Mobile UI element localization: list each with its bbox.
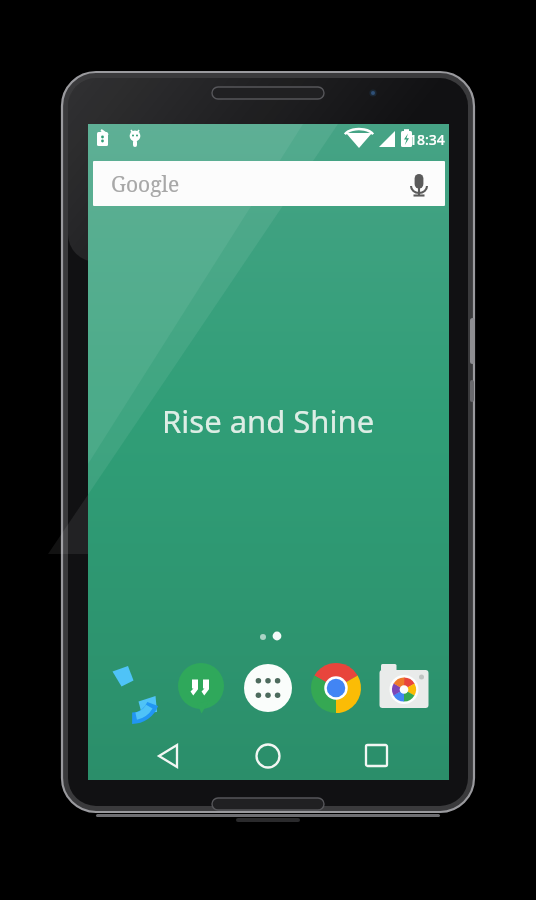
staticText: Google <box>111 170 180 199</box>
staticText: 18:34 <box>409 130 445 149</box>
staticText: Rise and Shine <box>162 400 375 442</box>
button[interactable]: Google <box>93 161 445 206</box>
button[interactable]: Phone <box>106 661 162 717</box>
button[interactable]: Hangouts <box>173 661 229 717</box>
button[interactable]: All apps <box>240 661 296 717</box>
button[interactable]: Camera <box>376 661 432 717</box>
button[interactable]: Chrome <box>308 661 364 717</box>
button[interactable]: Back <box>145 732 193 780</box>
button[interactable]: Home <box>244 732 292 780</box>
button[interactable]: Voice search <box>401 167 437 203</box>
button[interactable]: Recent apps <box>352 732 400 780</box>
